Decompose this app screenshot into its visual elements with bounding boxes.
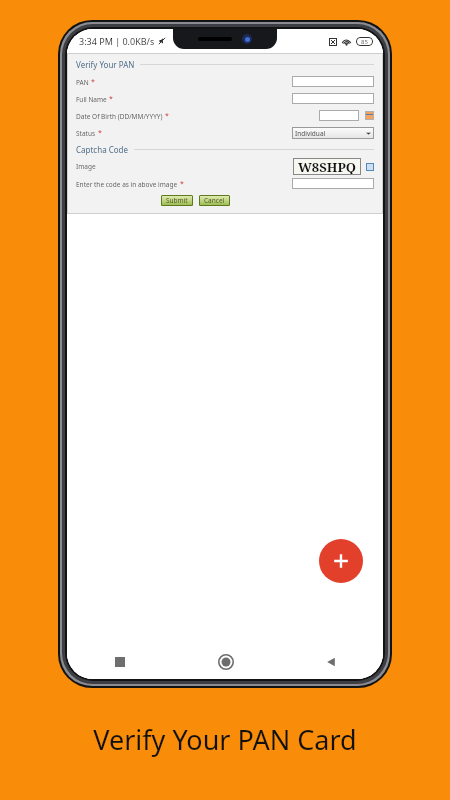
staticText: 85 [361, 38, 368, 46]
staticText: Verify Your PAN [76, 59, 135, 70]
staticText: Individual [295, 129, 366, 138]
staticText: * [98, 128, 102, 138]
staticText: * [180, 179, 184, 189]
staticText: * [109, 94, 113, 104]
staticText: Submit [166, 196, 188, 205]
staticText: Cancel [204, 196, 225, 205]
button[interactable]: Home [173, 645, 278, 679]
staticText: Date Of Birth (DD/MM/YYYY) [76, 112, 163, 121]
button[interactable]: Refresh captcha [366, 163, 374, 171]
button[interactable]: Text field [292, 76, 374, 87]
staticText: PAN [76, 78, 89, 87]
staticText: Full Name [76, 95, 107, 104]
button[interactable]: Cancel [199, 195, 230, 206]
button[interactable]: Text field [319, 110, 359, 121]
button[interactable]: Back [278, 645, 383, 679]
button[interactable]: Pick date [365, 111, 374, 120]
staticText: Verify Your PAN Card [93, 721, 357, 758]
button[interactable]: Text field [292, 93, 374, 104]
staticText: 3:34 PM | 0.0KB/s [79, 35, 155, 47]
button[interactable]: Individual [292, 127, 374, 139]
staticText: Enter the code as in above image [76, 180, 178, 189]
button[interactable]: Text field [292, 178, 374, 189]
staticText: * [165, 111, 169, 121]
staticText: W8SHPQ [298, 158, 356, 175]
staticText: * [91, 77, 95, 87]
button[interactable]: Submit [161, 195, 193, 206]
staticText: Status [76, 129, 96, 138]
button[interactable]: Add [319, 539, 363, 583]
staticText: Captcha Code [76, 144, 129, 155]
button[interactable]: Recent apps [67, 645, 173, 679]
staticText: Image [76, 162, 96, 171]
